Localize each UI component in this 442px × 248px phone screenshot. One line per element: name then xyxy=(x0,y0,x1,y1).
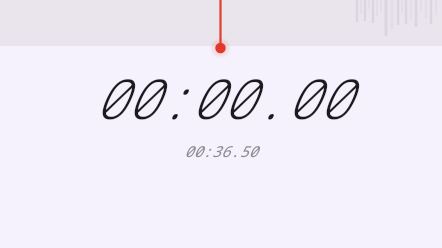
other: Playhead xyxy=(0,0,442,248)
staticText: 00:36.50 xyxy=(184,141,258,161)
staticText: 00:00.00 xyxy=(93,60,350,135)
button[interactable]: Timeline xyxy=(0,0,442,46)
button[interactable]: 00:00.00 xyxy=(0,60,442,161)
